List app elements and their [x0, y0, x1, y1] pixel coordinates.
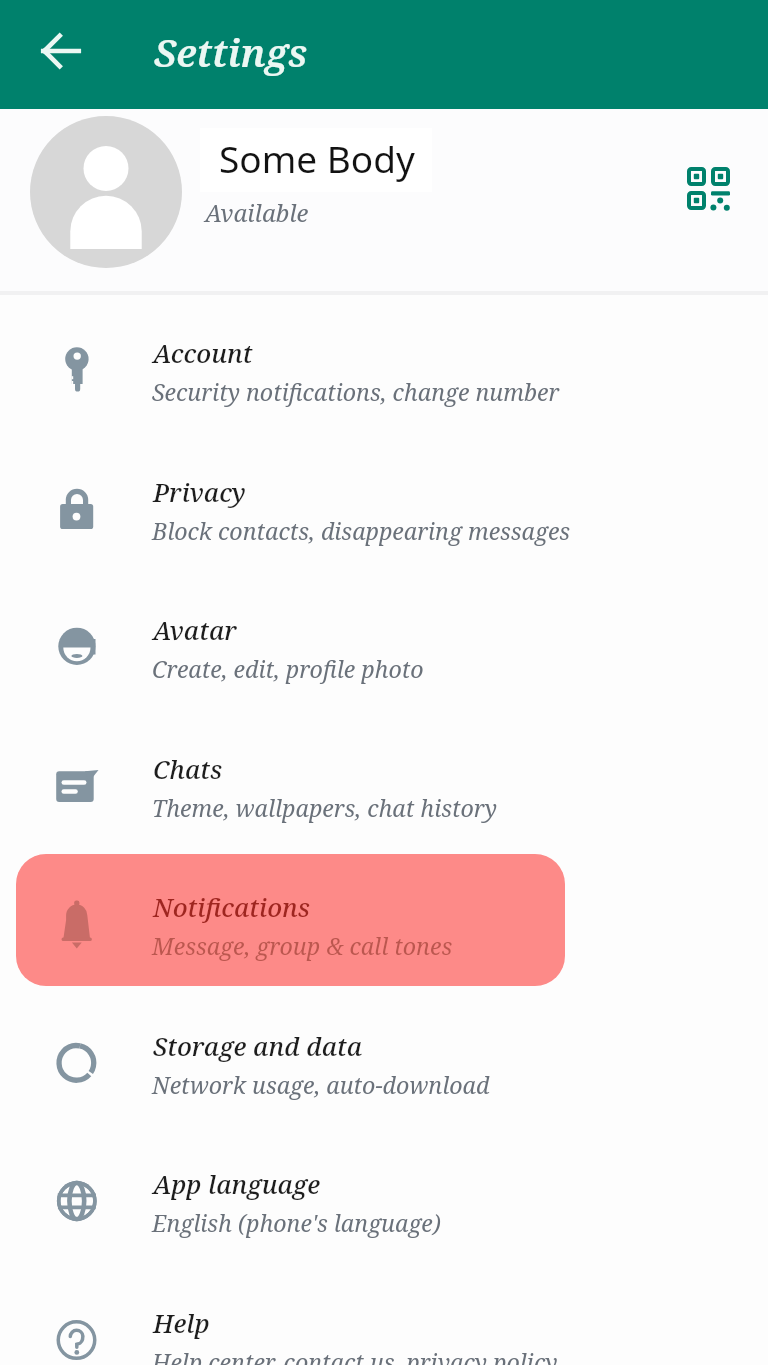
staticText: Security notifications, change number [152, 376, 560, 408]
staticText: Help center, contact us, privacy policy [152, 1346, 558, 1365]
button[interactable]: Help [0, 1270, 768, 1365]
button[interactable]: My QR code [687, 167, 730, 210]
staticText: Settings [154, 25, 308, 78]
button[interactable]: Chats [0, 716, 768, 848]
staticText: Some Body [219, 133, 415, 183]
staticText: App language [153, 1167, 321, 1202]
button[interactable]: Avatar [0, 577, 768, 709]
staticText: Theme, wallpapers, chat history [152, 792, 497, 824]
button[interactable]: Privacy [0, 439, 768, 571]
staticText: Account [153, 336, 253, 371]
button[interactable]: App language [0, 1131, 768, 1263]
staticText: English (phone's language) [152, 1207, 441, 1239]
button[interactable]: Account [0, 300, 768, 432]
staticText: Network usage, auto-download [152, 1069, 490, 1101]
staticText: Help [153, 1306, 210, 1341]
staticText: Create, edit, profile photo [152, 653, 424, 685]
button[interactable]: Notifications [0, 854, 768, 986]
button[interactable]: Storage and data [0, 993, 768, 1125]
staticText: Avatar [153, 613, 237, 648]
button[interactable]: Navigate back [29, 23, 91, 81]
staticText: Available [205, 196, 309, 229]
button[interactable]: Some Body [0, 109, 768, 291]
staticText: Message, group & call tones [152, 930, 453, 962]
staticText: Block contacts, disappearing messages [152, 515, 571, 547]
staticText: Notifications [153, 890, 311, 925]
staticText: Privacy [153, 475, 246, 510]
staticText: Chats [153, 752, 223, 787]
staticText: Storage and data [153, 1029, 363, 1064]
